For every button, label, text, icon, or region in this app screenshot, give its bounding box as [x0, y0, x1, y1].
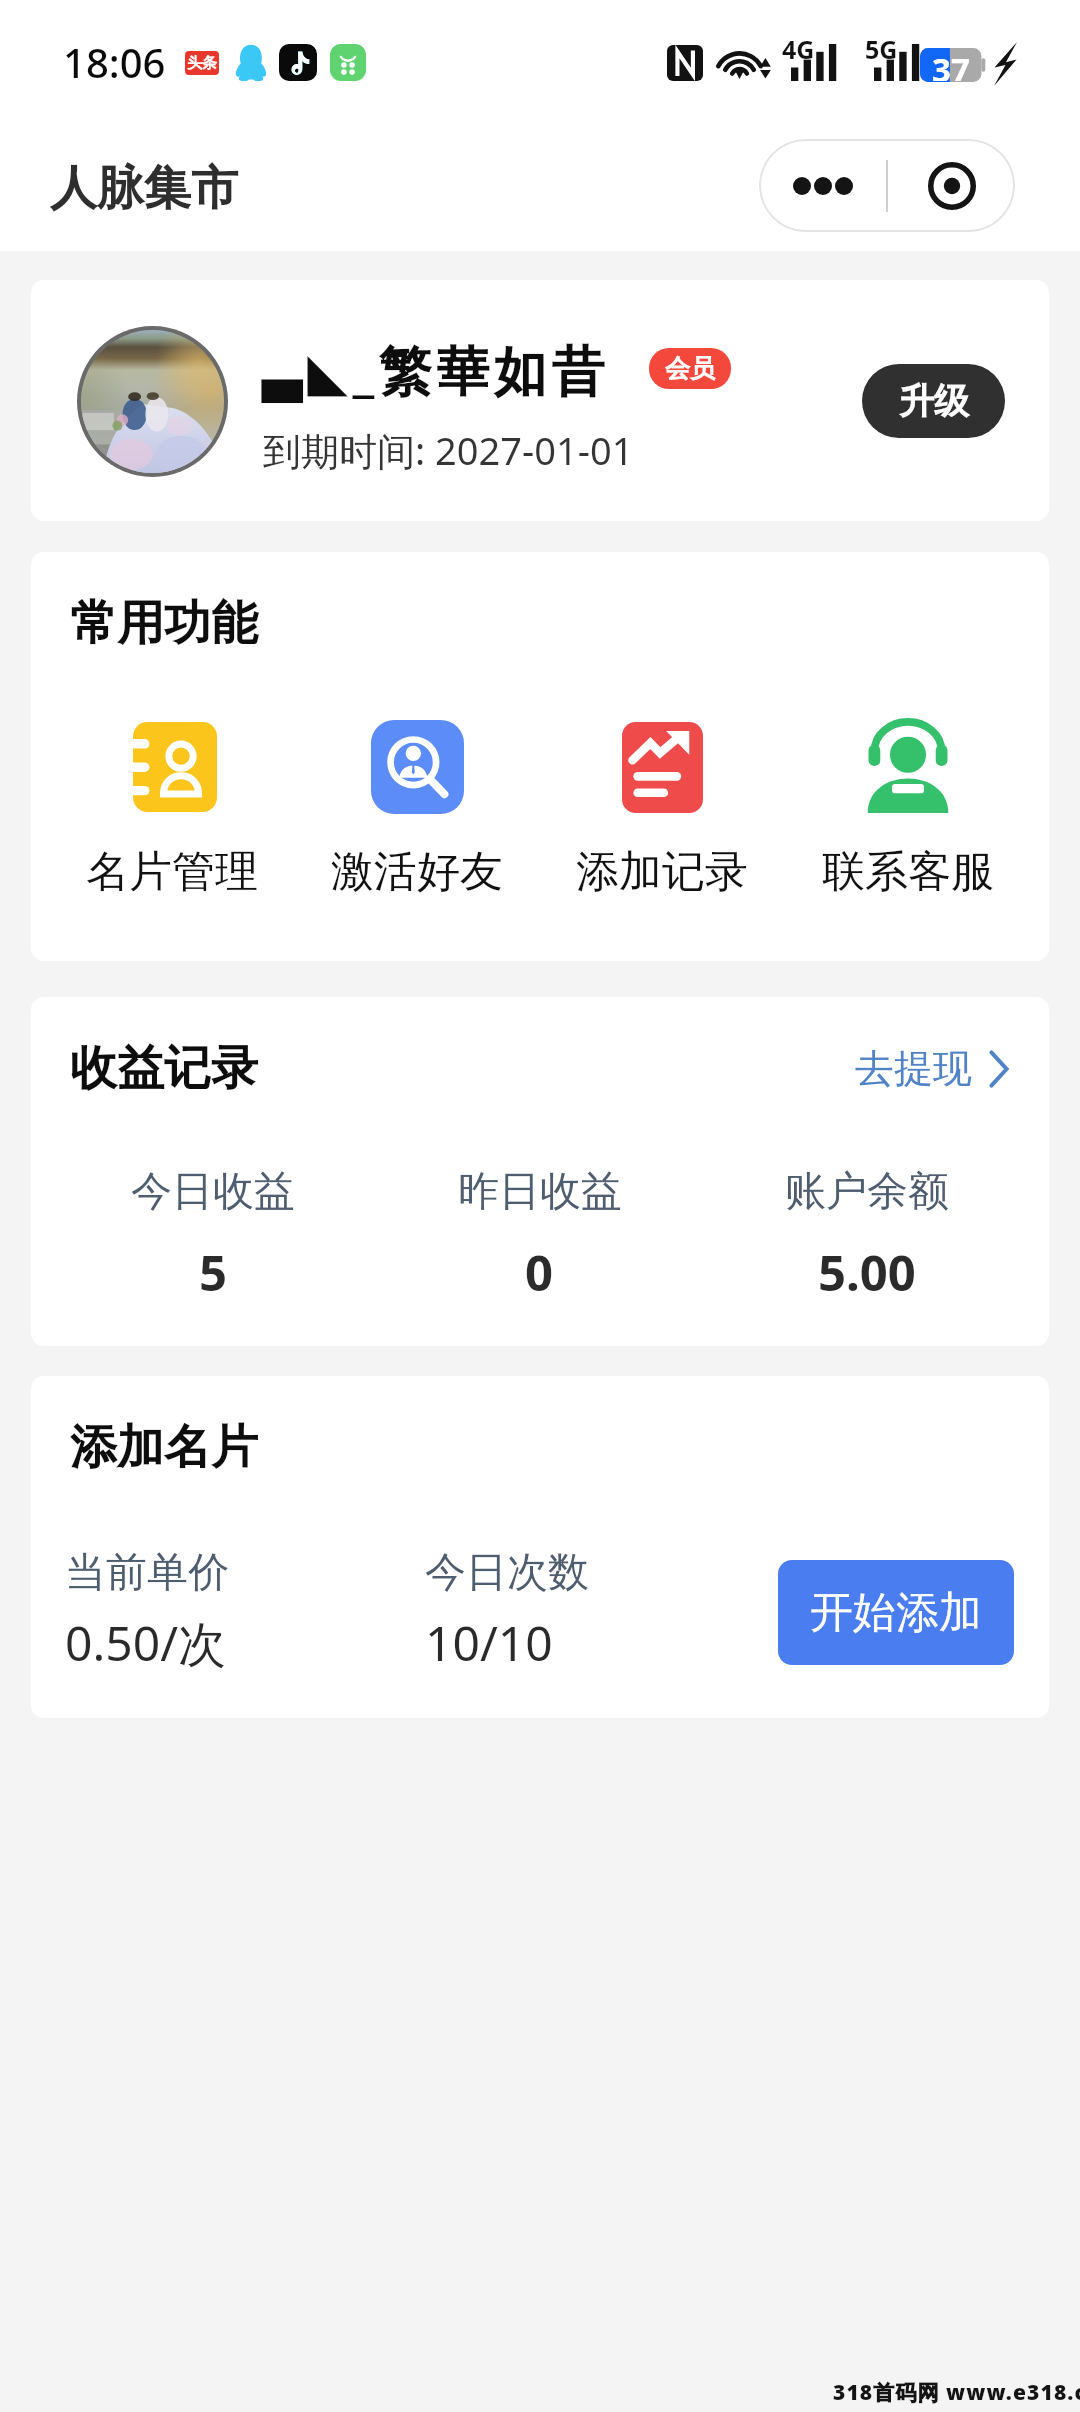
staticText: 4G	[782, 32, 815, 66]
button[interactable]: 开始添加	[778, 1560, 1014, 1665]
button[interactable]: 去提现	[849, 1038, 1015, 1099]
button[interactable]: 联系客服	[785, 720, 1031, 899]
staticText: 收益记录	[70, 1039, 258, 1098]
staticText: 添加名片	[70, 1418, 258, 1477]
staticText: 去提现	[855, 1044, 972, 1093]
staticText: 5.00	[818, 1239, 916, 1306]
staticText: 添加记录	[576, 845, 748, 899]
staticText: 联系客服	[822, 845, 994, 899]
staticText: 0	[525, 1239, 554, 1306]
staticText: 升级	[899, 379, 969, 423]
staticText: 名片管理	[86, 845, 258, 899]
staticText: 37	[932, 47, 970, 81]
staticText: 当前单价	[65, 1547, 229, 1599]
staticText: 激活好友	[331, 845, 503, 899]
button[interactable]: 添加记录	[539, 720, 785, 899]
button[interactable]: More options	[759, 139, 886, 232]
staticText: 人脉集市	[50, 159, 238, 218]
button[interactable]: Close mini program	[888, 139, 1015, 232]
staticText: 头条	[187, 54, 217, 73]
staticText: 18:06	[63, 35, 166, 89]
staticText: 开始添加	[810, 1586, 982, 1640]
button[interactable]: 升级	[862, 364, 1005, 438]
staticText: 今日次数	[425, 1547, 589, 1599]
staticText: 到期时间: 2027-01-01	[263, 424, 634, 476]
staticText: 会员	[665, 353, 715, 384]
button[interactable]: 激活好友	[294, 720, 539, 899]
button[interactable]: ▃◣_繁華如昔	[31, 280, 1049, 521]
staticText: 常用功能	[70, 594, 258, 653]
staticText: 今日收益	[131, 1166, 295, 1218]
staticText: 5G	[865, 32, 898, 66]
staticText: 账户余额	[785, 1166, 949, 1218]
staticText: 318首码网 www.e318.com	[833, 2378, 1080, 2407]
staticText: 10/10	[425, 1610, 553, 1675]
button[interactable]: 名片管理	[49, 720, 294, 899]
staticText: 昨日收益	[458, 1166, 622, 1218]
staticText: 5	[199, 1239, 228, 1306]
staticText: 0.50/次	[65, 1610, 227, 1676]
staticText: ▃◣_繁華如昔	[262, 333, 609, 405]
